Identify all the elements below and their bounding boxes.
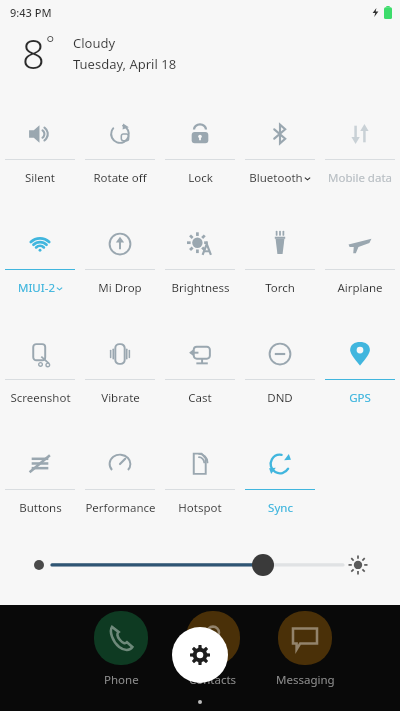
- staticText: Mobile data: [328, 170, 392, 186]
- staticText: Contacts: [189, 672, 237, 688]
- button[interactable]: Cast: [160, 328, 240, 438]
- staticText: °: [46, 30, 55, 57]
- staticText: Silent: [25, 170, 55, 186]
- staticText: Brightness: [171, 280, 230, 296]
- button[interactable]: Sync: [240, 438, 320, 548]
- staticText: Bluetooth: [249, 170, 303, 186]
- button[interactable]: Screenshot: [0, 328, 80, 438]
- staticText: Lock: [188, 170, 213, 186]
- staticText: GPS: [349, 390, 371, 406]
- other: Vibrate: [107, 341, 133, 367]
- button[interactable]: Bluetooth: [240, 108, 320, 218]
- button[interactable]: Torch: [240, 218, 320, 328]
- button[interactable]: Vibrate: [80, 328, 160, 438]
- button[interactable]: Rotate off: [80, 108, 160, 218]
- staticText: 9:43 PM: [10, 5, 52, 20]
- staticText: Messaging: [276, 672, 335, 688]
- button[interactable]: Performance: [80, 438, 160, 548]
- other: Screenshot: [27, 341, 53, 367]
- other: GPS: [347, 341, 373, 367]
- staticText: Airplane: [337, 280, 383, 296]
- button[interactable]: MIUI-2: [0, 218, 80, 328]
- button[interactable]: Buttons: [0, 438, 80, 548]
- other: Hotspot: [187, 451, 213, 477]
- other: Silent: [27, 121, 53, 147]
- other: Torch: [267, 231, 293, 257]
- staticText: Hotspot: [178, 500, 222, 516]
- other: MIUI-2: [27, 231, 53, 257]
- staticText: MIUI-2: [18, 280, 55, 296]
- button[interactable]: Mi Drop: [80, 218, 160, 328]
- button[interactable]: Phone: [82, 611, 160, 688]
- other: DND: [267, 341, 293, 367]
- button[interactable]: Hotspot: [160, 438, 240, 548]
- other: Mi Drop: [107, 231, 133, 257]
- other: Mobile data: [347, 121, 373, 147]
- other: Bluetooth: [267, 121, 293, 147]
- staticText: Screenshot: [10, 390, 71, 406]
- button[interactable]: Contacts: [174, 611, 252, 688]
- button[interactable]: Brightness slider: [0, 548, 400, 584]
- staticText: Torch: [265, 280, 295, 296]
- button[interactable]: Airplane: [320, 218, 400, 328]
- button[interactable]: Lock: [160, 108, 240, 218]
- button[interactable]: Mobile data: [320, 108, 400, 218]
- staticText: Phone: [104, 672, 139, 688]
- other: Cast: [187, 341, 213, 367]
- staticText: Rotate off: [93, 170, 147, 186]
- staticText: Sync: [268, 500, 293, 516]
- staticText: Vibrate: [101, 390, 140, 406]
- button[interactable]: DND: [240, 328, 320, 438]
- other: Brightness: [187, 231, 213, 257]
- staticText: Performance: [85, 500, 156, 516]
- button[interactable]: GPS: [320, 328, 400, 438]
- staticText: Cast: [188, 390, 212, 406]
- other: Lock: [187, 121, 213, 147]
- staticText: DND: [267, 390, 293, 406]
- staticText: Cloudy: [73, 34, 116, 52]
- staticText: Buttons: [19, 500, 62, 516]
- button[interactable]: Messaging: [266, 611, 344, 688]
- staticText: Mi Drop: [98, 280, 142, 296]
- other: Buttons: [27, 451, 53, 477]
- button[interactable]: Silent: [0, 108, 80, 218]
- button[interactable]: Settings: [172, 627, 228, 683]
- button[interactable]: Brightness: [160, 218, 240, 328]
- other: Sync: [267, 451, 293, 477]
- other: Performance: [107, 451, 133, 477]
- staticText: Tuesday, April 18: [73, 55, 177, 73]
- other: Airplane: [347, 231, 373, 257]
- staticText: 8: [22, 26, 45, 80]
- other: Rotate off: [107, 121, 133, 147]
